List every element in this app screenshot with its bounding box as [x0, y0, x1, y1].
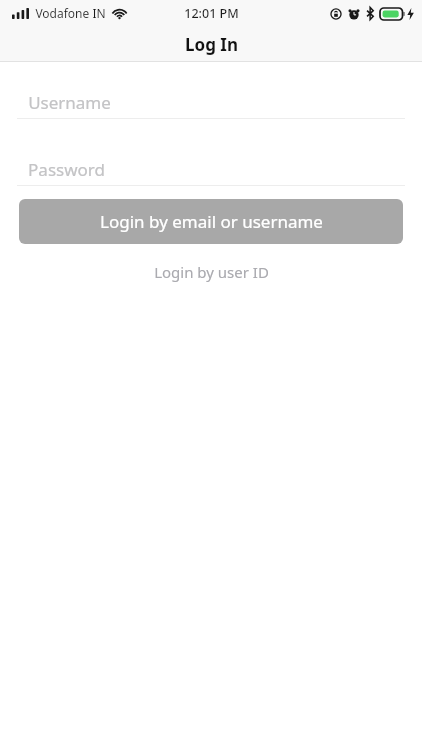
button[interactable]: Login by user ID — [0, 259, 422, 285]
button[interactable]: Login by email or username — [19, 199, 403, 244]
staticText: 12:01 PM — [184, 5, 239, 22]
staticText: Log In — [185, 33, 238, 56]
staticText: Username — [28, 91, 111, 114]
staticText: Login by user ID — [154, 262, 269, 282]
button[interactable]: Username — [17, 86, 405, 119]
staticText: Vodafone IN — [35, 5, 106, 21]
button[interactable]: Password — [17, 153, 405, 186]
staticText: Password — [28, 158, 105, 181]
staticText: Login by email or username — [100, 210, 323, 233]
